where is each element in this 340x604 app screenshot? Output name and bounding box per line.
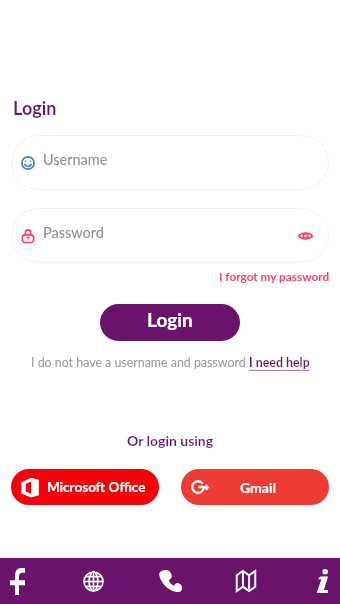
button[interactable]: Gmail: [181, 469, 329, 505]
button[interactable]: I need help: [249, 355, 310, 370]
staticText: Username: [43, 151, 108, 168]
staticText: Microsoft Office: [47, 479, 146, 495]
button[interactable]: Show password: [298, 225, 313, 247]
button[interactable]: Website: [81, 558, 105, 604]
staticText: Gmail: [240, 479, 276, 496]
staticText: Or login using: [127, 432, 214, 449]
staticText: Login: [147, 308, 193, 331]
button[interactable]: Call: [158, 558, 182, 604]
button[interactable]: Login: [100, 304, 240, 341]
staticText: I do not have a username and password: [31, 355, 249, 370]
button[interactable]: Info: [310, 558, 334, 604]
button[interactable]: Map: [234, 558, 258, 604]
button[interactable]: Password: [11, 208, 329, 263]
button[interactable]: Microsoft Office: [11, 469, 159, 505]
staticText: Password: [43, 224, 104, 241]
staticText: Login: [13, 97, 57, 119]
button[interactable]: Facebook: [5, 558, 29, 604]
button[interactable]: Username: [11, 135, 329, 190]
button[interactable]: I forgot my password: [219, 270, 340, 284]
